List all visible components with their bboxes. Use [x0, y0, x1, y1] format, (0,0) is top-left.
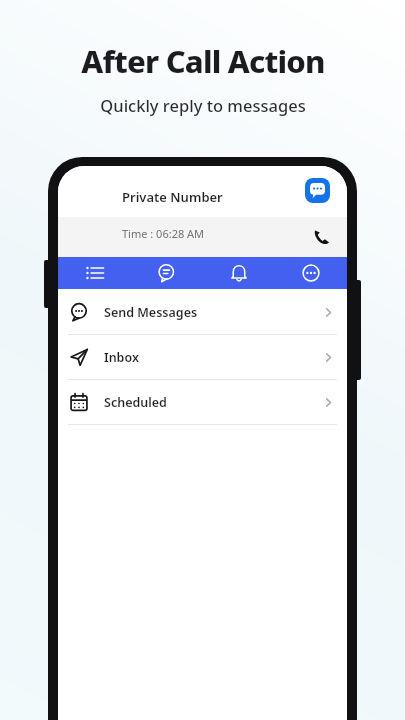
staticText: Send Messages — [104, 304, 322, 321]
staticText: After Call Action — [81, 40, 325, 82]
button[interactable]: Messages — [131, 257, 203, 289]
button[interactable]: Inbox — [58, 335, 347, 379]
staticText: Time : 06:28 AM — [122, 226, 205, 241]
staticText: Quickly reply to messages — [100, 94, 306, 116]
button[interactable]: More — [275, 257, 347, 289]
staticText: Private Number — [122, 188, 223, 206]
staticText: Inbox — [104, 349, 322, 366]
button[interactable]: Notifications — [203, 257, 275, 289]
button[interactable]: Menu — [58, 257, 131, 289]
button[interactable]: Scheduled — [58, 380, 347, 424]
button[interactable]: Send Messages — [58, 290, 347, 334]
button[interactable]: Messages — [305, 178, 330, 203]
staticText: Scheduled — [104, 394, 322, 411]
button[interactable]: Call — [308, 223, 334, 249]
